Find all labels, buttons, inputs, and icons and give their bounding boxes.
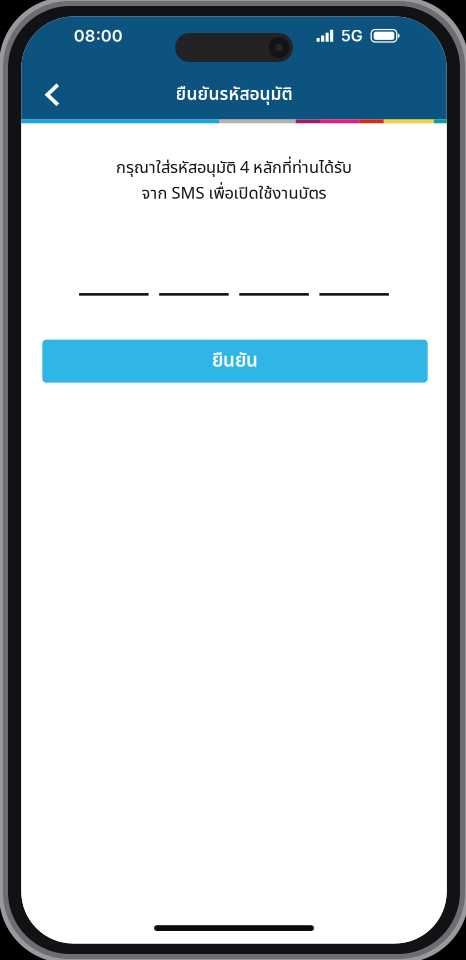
staticText: 5G [341, 26, 363, 45]
staticText: จาก SMS เพื่อเปิดใช้งานบัตร [141, 181, 326, 206]
staticText: กรุณาใส่รหัสอนุมัติ 4 หลักที่ท่านได้รับ [116, 155, 352, 180]
staticText: ยืนยัน [212, 347, 258, 375]
button[interactable]: ยืนยัน [42, 340, 428, 383]
staticText: ยืนยันรหัสอนุมัติ [175, 82, 292, 108]
staticText: 08:00 [74, 26, 123, 46]
button[interactable]: Back [34, 71, 71, 119]
